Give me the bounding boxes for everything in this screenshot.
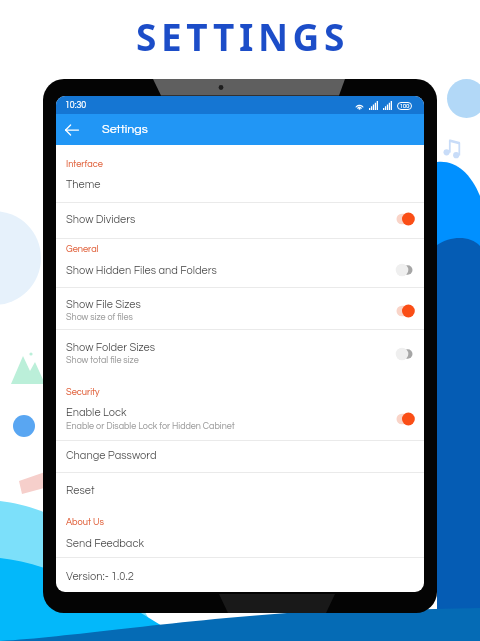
button[interactable]: Interface Theme	[56, 145, 424, 202]
staticText: Show Hidden Files and Folders	[66, 265, 217, 276]
staticText: Show Folder Sizes	[66, 342, 156, 353]
staticText: About Us	[66, 517, 104, 526]
staticText: Theme	[66, 179, 101, 190]
staticText: Security	[66, 387, 100, 396]
button[interactable]: Toggle off	[393, 346, 415, 362]
staticText: 10:30	[65, 101, 87, 110]
button[interactable]: Enable Lock	[56, 391, 424, 440]
staticText: Show total file size	[66, 356, 139, 365]
button[interactable]: Send Feedback	[56, 521, 424, 557]
staticText: Interface	[66, 159, 103, 168]
staticText: Settings	[102, 123, 148, 136]
button[interactable]: Change Password	[56, 440, 424, 472]
button[interactable]: Show Dividers	[56, 202, 424, 238]
button[interactable]: Show Hidden Files and Folders	[56, 238, 424, 288]
button[interactable]: Show File Sizes	[56, 287, 424, 329]
button[interactable]: Version	[56, 557, 424, 590]
staticText: Change Password	[66, 450, 157, 461]
staticText: Enable or Disable Lock for Hidden Cabine…	[66, 422, 235, 431]
staticText: Version:- 1.0.2	[66, 571, 134, 582]
button[interactable]: Reset	[56, 472, 424, 521]
staticText: Show File Sizes	[66, 299, 141, 310]
staticText: Reset	[66, 485, 95, 496]
button[interactable]: Show Folder Sizes	[56, 329, 424, 391]
staticText: Show size of files	[66, 313, 133, 322]
staticText: General	[66, 244, 99, 253]
staticText: 100	[400, 103, 410, 109]
button[interactable]: Toggle on	[393, 211, 415, 227]
staticText: Send Feedback	[66, 538, 144, 549]
staticText: Show Dividers	[66, 214, 136, 225]
staticText: Enable Lock	[66, 407, 127, 418]
button[interactable]: Toggle off	[393, 262, 415, 278]
button[interactable]: Toggle on	[393, 411, 415, 427]
button[interactable]: Toggle on	[393, 303, 415, 319]
staticText: SETTINGS	[136, 11, 349, 61]
button[interactable]: Back	[61, 119, 83, 141]
